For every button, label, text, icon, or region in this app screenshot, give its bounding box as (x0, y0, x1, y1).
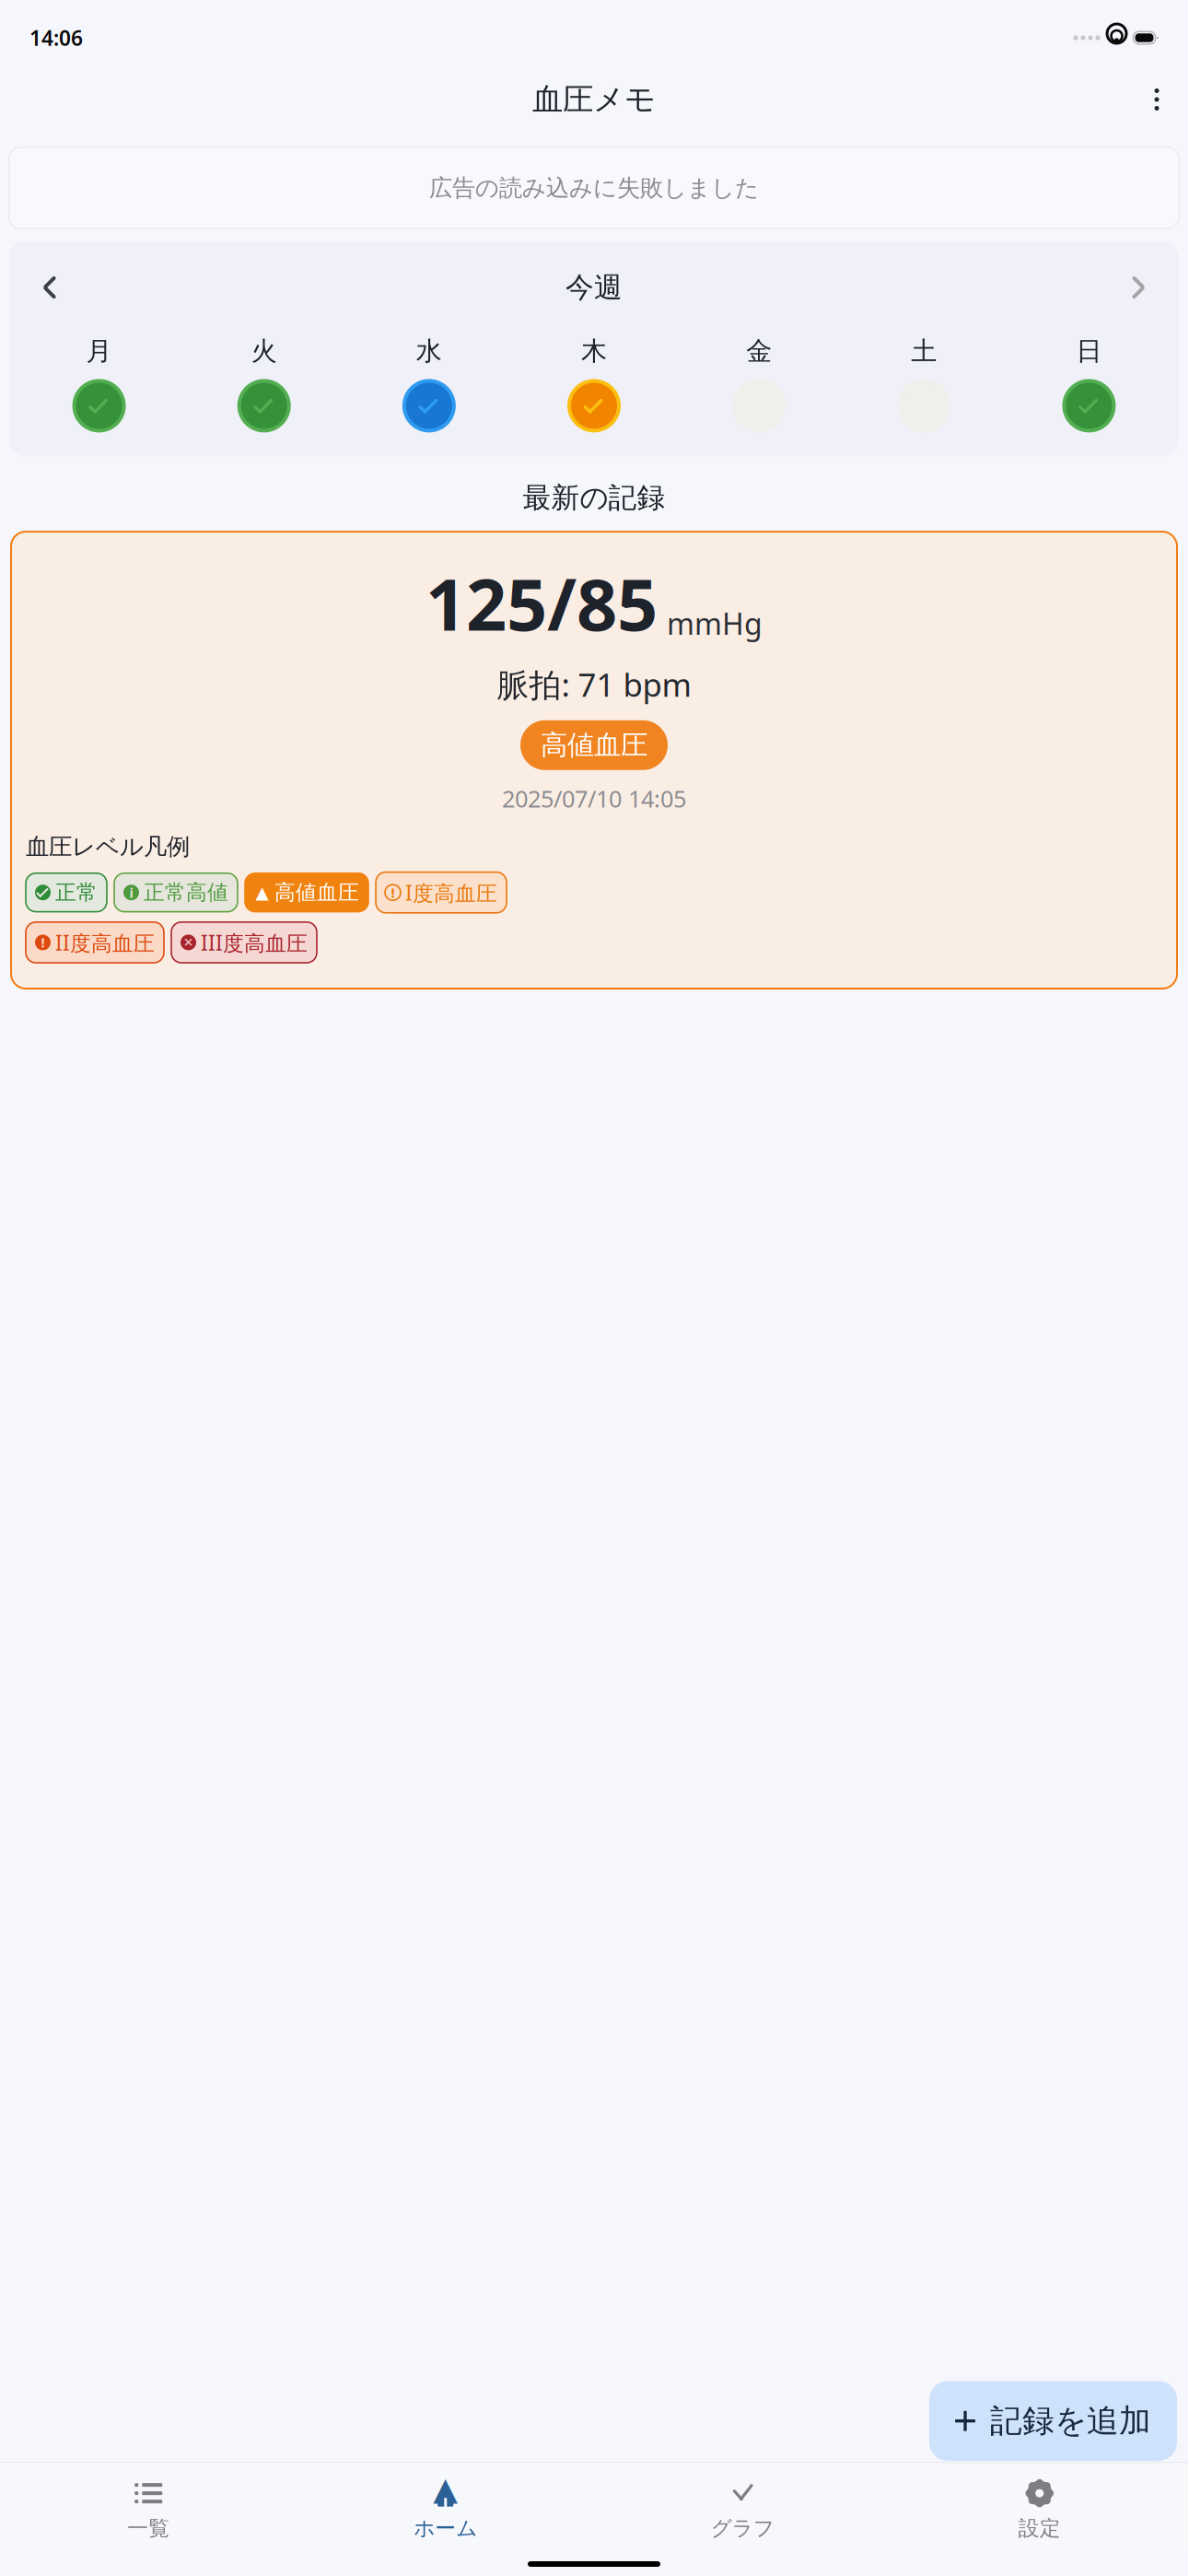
staticText: 金 (746, 335, 772, 367)
staticText: ホーム (414, 2515, 477, 2541)
button[interactable]: ! (376, 872, 507, 913)
button[interactable]: 金 (677, 335, 842, 432)
staticText: ! (391, 883, 395, 901)
staticText: III度高血圧 (201, 929, 308, 956)
staticText: ! (41, 933, 45, 951)
staticText: 今週 (565, 270, 623, 305)
button[interactable]: ▲ (297, 2476, 594, 2545)
staticText: mmHg (667, 604, 763, 643)
staticText: 広告の読み込みに失敗しました (429, 174, 759, 202)
staticText: 高値血圧 (541, 729, 647, 762)
button[interactable]: ▲ (245, 873, 368, 912)
staticText: 記録を追加 (990, 2401, 1151, 2441)
staticText: 正常高値 (144, 880, 228, 905)
button[interactable]: 前の週 (24, 265, 76, 310)
button[interactable]: i (114, 873, 238, 912)
button[interactable]: 記録を追加 (929, 2381, 1177, 2461)
staticText: 正常 (55, 880, 98, 905)
button[interactable]: ✕ (171, 922, 317, 963)
staticText: 設定 (1018, 2515, 1061, 2541)
button[interactable]: 土 (842, 335, 1006, 432)
staticText: i (129, 883, 133, 901)
staticText: 水 (416, 335, 442, 367)
button[interactable]: 月 (17, 335, 182, 432)
staticText: 2025/07/10 14:05 (502, 783, 686, 814)
staticText: I度高血圧 (405, 879, 497, 906)
staticText: ✕ (183, 935, 193, 949)
staticText: 血圧メモ (532, 81, 656, 118)
staticText: 火 (251, 335, 277, 367)
staticText: 木 (581, 335, 607, 367)
staticText: II度高血圧 (55, 929, 155, 956)
staticText: 高値血圧 (274, 880, 359, 905)
button[interactable]: 火 (182, 335, 346, 432)
button[interactable]: 一覧 (0, 2476, 297, 2545)
staticText: 脈拍: 71 bpm (497, 663, 691, 706)
staticText: 最新の記録 (523, 480, 665, 515)
button[interactable]: 設定 (891, 2476, 1188, 2545)
button[interactable]: ! (26, 922, 164, 963)
button[interactable]: 次の週 (1113, 265, 1164, 310)
staticText: 血圧レベル凡例 (26, 832, 190, 861)
button[interactable]: 木 (512, 335, 676, 432)
staticText: グラフ (711, 2515, 774, 2541)
staticText: ▲ (433, 2471, 458, 2507)
button[interactable]: メニュー (1137, 79, 1177, 120)
staticText: ▲ (256, 883, 268, 902)
staticText: 日 (1076, 335, 1102, 367)
button[interactable]: 水 (347, 335, 512, 432)
button[interactable]: 日 (1007, 335, 1172, 432)
staticText: 一覧 (127, 2515, 170, 2541)
staticText: 月 (86, 335, 112, 367)
button[interactable]: 正常 (26, 873, 107, 912)
staticText: 14:06 (29, 24, 83, 52)
staticText: 125/85 (425, 556, 658, 650)
button[interactable]: グラフ (594, 2476, 891, 2545)
staticText: 土 (911, 335, 937, 367)
